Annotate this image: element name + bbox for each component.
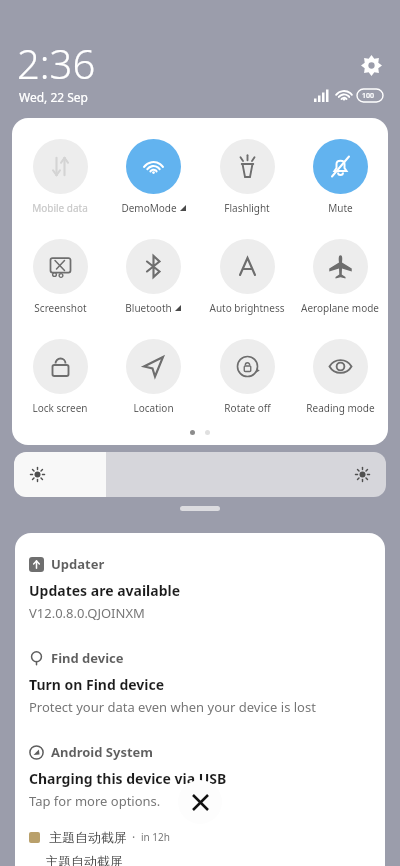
button[interactable]: Settings [356,50,386,80]
staticText: Mute [328,201,353,215]
button[interactable]: Screenshot [14,239,106,315]
staticText: DemoMode [121,201,177,215]
button[interactable]: Location [107,339,199,415]
staticText: Charging this device via USB [29,769,227,788]
staticText: 2:36 [17,36,96,90]
button[interactable]: Reading mode [294,339,386,415]
button[interactable]: Flashlight [201,139,293,215]
button[interactable]: DemoMode [107,139,199,215]
button[interactable]: Mobile data [14,139,106,215]
staticText: Updates are available [29,581,181,600]
button[interactable]: Turn on Find device [29,675,165,694]
staticText: Rotate off [224,401,271,415]
button[interactable]: Android System [29,743,154,761]
button[interactable]: Find device [29,649,124,667]
staticText: Find device [51,649,124,667]
staticText: Wed, 22 Sep [19,89,88,105]
staticText: Screenshot [34,301,87,315]
button[interactable]: Updater [29,555,105,573]
staticText: Turn on Find device [29,675,165,694]
button[interactable]: Brightness [14,452,386,497]
staticText: 主题自动截屏 [49,829,127,845]
button[interactable]: Mute [294,139,386,215]
staticText: · [132,829,136,845]
staticText: Location [133,401,174,415]
button[interactable]: 主题自动截屏 [29,829,170,845]
button[interactable]: Aeroplane mode [294,239,386,315]
staticText: Protect your data even when your device … [29,698,316,716]
staticText: 100 [362,91,375,101]
staticText: V12.0.8.0.QJOINXM [29,604,145,622]
staticText: Bluetooth [125,301,172,315]
button[interactable]: Close [178,780,222,824]
button[interactable]: Charging this device via USB [29,769,227,788]
staticText: in 12h [141,830,170,844]
button[interactable]: Rotate off [201,339,293,415]
staticText: Aeroplane mode [301,301,379,315]
staticText: Lock screen [32,401,88,415]
staticText: Android System [51,743,154,761]
staticText: Auto brightness [209,301,285,315]
staticText: Updater [51,555,105,573]
button[interactable]: Updates are available [29,581,181,600]
staticText: Flashlight [224,201,270,215]
staticText: Mobile data [32,201,88,215]
staticText: Reading mode [306,401,375,415]
staticText: Tap for more options. [29,792,161,810]
button[interactable]: Auto brightness [201,239,293,315]
staticText: 主题自动截屏 [45,853,123,866]
button[interactable]: Bluetooth [107,239,199,315]
button[interactable]: Lock screen [14,339,106,415]
